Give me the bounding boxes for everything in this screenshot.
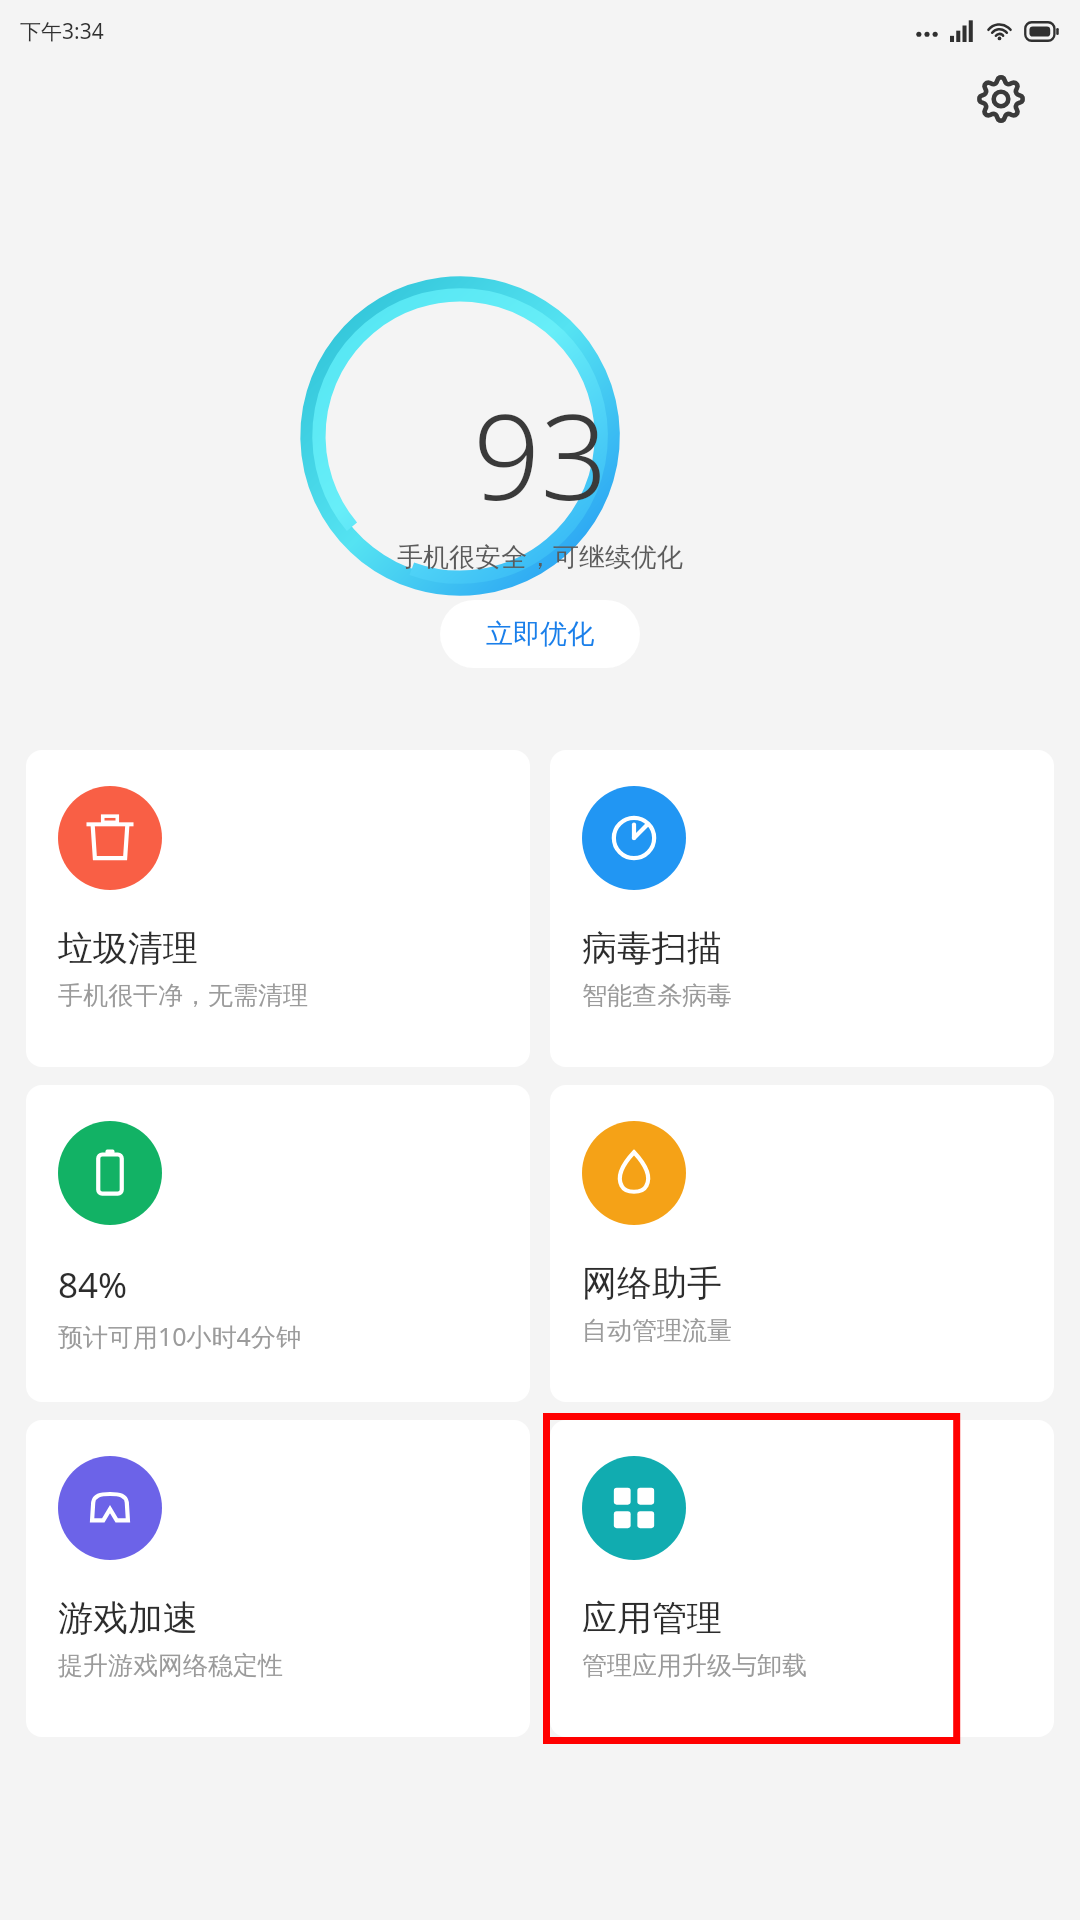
button[interactable]: 网络助手 [550,1085,1054,1402]
staticText: 手机很干净，无需清理 [58,980,308,1011]
button[interactable]: 应用管理 [550,1420,1054,1737]
staticText: 游戏加速 [58,1596,198,1640]
button[interactable]: 游戏加速 [26,1420,530,1737]
staticText: 管理应用升级与卸载 [582,1650,807,1681]
staticText: 下午3:34 [20,17,104,46]
staticText: 84% [58,1261,128,1309]
button[interactable]: 84% [26,1085,530,1402]
button[interactable]: 立即优化 [440,600,640,668]
staticText: 病毒扫描 [582,926,722,970]
staticText: 93 [473,374,608,535]
staticText: 自动管理流量 [582,1315,732,1346]
button[interactable]: 病毒扫描 [550,750,1054,1067]
staticText: 网络助手 [582,1261,722,1305]
staticText: 预计可用10小时4分钟 [58,1319,301,1353]
button[interactable]: 垃圾清理 [26,750,530,1067]
staticText: 立即优化 [486,617,594,651]
staticText: 手机很安全，可继续优化 [397,541,683,574]
button[interactable]: Settings [970,68,1032,130]
staticText: 智能查杀病毒 [582,980,732,1011]
staticText: 应用管理 [582,1596,722,1640]
staticText: 提升游戏网络稳定性 [58,1650,283,1681]
staticText: 垃圾清理 [58,926,198,970]
